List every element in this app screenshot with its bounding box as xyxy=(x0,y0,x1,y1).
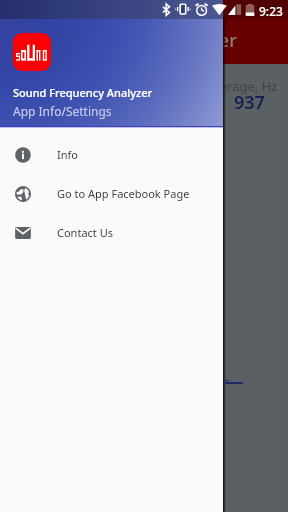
staticText: Info xyxy=(57,147,78,162)
staticText: 9:23 xyxy=(259,3,283,19)
staticText: Go to App Facebook Page xyxy=(57,186,190,201)
button[interactable]: Contact us by email xyxy=(0,213,223,252)
staticText: Frequency Average, Hz xyxy=(138,77,278,95)
other: Contact us by email xyxy=(15,225,31,241)
button[interactable]: Info xyxy=(0,135,223,174)
other: Open Facebook page xyxy=(15,186,31,202)
staticText: Contact Us xyxy=(57,225,113,240)
staticText: 937 xyxy=(234,90,265,115)
staticText: Sound Frequency Analyzer xyxy=(9,28,237,53)
other: Info xyxy=(15,147,31,163)
button[interactable]: Open Facebook page xyxy=(0,174,223,213)
staticText: App Info/Settings xyxy=(13,103,112,119)
staticText: Sound Frequency Analyzer xyxy=(13,85,153,100)
other: App logo xyxy=(13,33,51,71)
